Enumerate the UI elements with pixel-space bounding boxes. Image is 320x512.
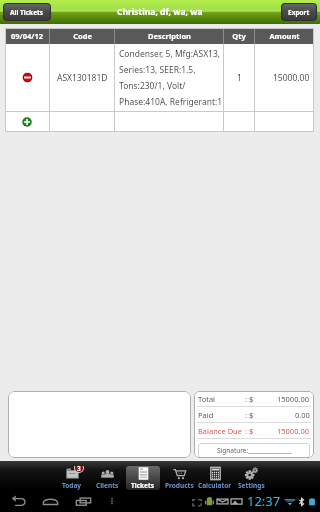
staticText: Paid: [198, 410, 214, 420]
staticText: All Tickets: [10, 8, 44, 17]
staticText: Amount: [269, 31, 300, 41]
staticText: Settings: [238, 481, 265, 490]
staticText: 12:37: [247, 492, 281, 510]
button[interactable]: All Tickets: [3, 3, 51, 21]
button[interactable]: Tickets: [126, 466, 160, 490]
staticText: Signature:_______________: [217, 446, 292, 455]
staticText: Calculator: [198, 481, 232, 490]
button[interactable]: Recents: [75, 493, 92, 510]
staticText: ASX130181D: [57, 72, 108, 84]
button[interactable]: More options: [106, 495, 118, 507]
staticText: Export: [288, 8, 310, 17]
staticText: Christina, df, wa, wa: [117, 6, 203, 18]
staticText: Today: [62, 481, 82, 490]
staticText: Balance Due: [198, 426, 242, 436]
button[interactable]: Remove item: [22, 72, 33, 83]
button[interactable]: Add item: [22, 117, 32, 127]
button[interactable]: Back: [10, 493, 27, 510]
staticText: Condenser, 5, Mfg:ASX13,: [119, 48, 221, 60]
staticText: 3: [77, 466, 81, 472]
button[interactable]: Products: [162, 466, 196, 490]
staticText: Clients: [96, 481, 119, 490]
button[interactable]: 3: [55, 466, 88, 490]
button[interactable]: Clients: [90, 466, 124, 490]
staticText: Code: [73, 31, 92, 41]
staticText: Tons:230/1, Volt/: [119, 80, 186, 92]
staticText: Total: [198, 394, 216, 404]
staticText: 09/04/12: [11, 31, 43, 41]
staticText: : $: [245, 410, 254, 420]
staticText: 15000.00: [277, 394, 310, 404]
staticText: 1: [237, 72, 242, 84]
staticText: Products: [165, 481, 194, 490]
staticText: Phase:410A, Refrigerant:1: [119, 96, 223, 107]
staticText: Series:13, SEER:1.5,: [119, 64, 196, 76]
button[interactable]: Notes: [8, 391, 191, 458]
button[interactable]: Home: [42, 493, 59, 510]
staticText: 15000.00: [277, 426, 310, 436]
staticText: : $: [245, 394, 254, 404]
staticText: Qty: [232, 31, 246, 41]
staticText: : $: [245, 426, 254, 436]
button[interactable]: Export: [281, 3, 317, 21]
button[interactable]: Calculator: [198, 466, 232, 490]
staticText: Description: [148, 31, 191, 41]
button[interactable]: Settings: [234, 466, 268, 490]
staticText: Tickets: [131, 481, 155, 490]
button[interactable]: Signature:_______________: [198, 443, 310, 458]
staticText: 0.00: [295, 410, 310, 420]
staticText: 15000.00: [273, 72, 310, 84]
